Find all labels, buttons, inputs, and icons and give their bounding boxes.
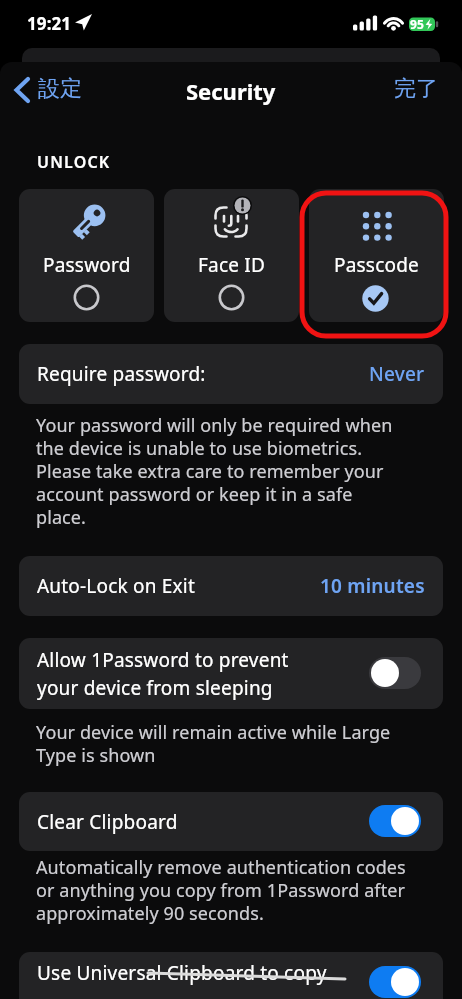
button[interactable]: 完了 [394,75,438,103]
staticText: 10 minutes [320,573,425,599]
button[interactable] [164,189,299,322]
button[interactable] [369,805,421,837]
staticText: Clear Clipboard [37,809,178,835]
staticText: Passcode [334,252,419,278]
button[interactable] [369,966,421,998]
staticText: Require password: [37,361,206,387]
staticText: Your password will only be required when… [36,413,393,529]
button[interactable] [309,189,444,322]
staticText: 19:21 [27,12,72,35]
staticText: Face ID [198,252,266,278]
button[interactable] [19,556,443,616]
staticText: Auto-Lock on Exit [37,573,195,599]
staticText: Your device will remain active while Lar… [36,720,391,767]
button[interactable]: 設定 [38,75,82,103]
button[interactable] [19,952,443,999]
button[interactable] [14,77,30,103]
staticText: 完了 [394,75,438,103]
button[interactable] [19,189,154,322]
staticText: Use Universal Clipboard to copy [37,960,327,986]
staticText: Never [369,361,425,387]
staticText: UNLOCK [37,151,111,173]
staticText: 95 [410,16,424,32]
staticText: Allow 1Password to prevent your device f… [37,647,289,700]
staticText: Security [186,76,276,106]
staticText: 設定 [38,75,82,103]
button[interactable] [19,792,443,851]
button[interactable] [19,344,443,404]
button[interactable] [19,638,443,709]
staticText: Password [43,252,131,278]
staticText: Automatically remove authentication code… [36,855,406,925]
button[interactable] [369,657,421,689]
